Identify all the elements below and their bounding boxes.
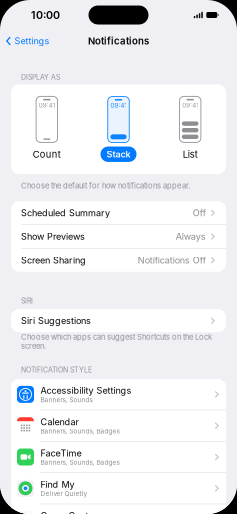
staticText: 09:41	[182, 102, 198, 109]
staticText: Accessibility Settings	[40, 385, 131, 396]
staticText: Show Previews	[21, 231, 85, 242]
staticText: Game Center	[40, 510, 96, 514]
staticText: Notifications Off	[138, 255, 206, 266]
staticText: 10:00	[31, 8, 60, 21]
staticText: 09:41	[39, 102, 55, 109]
staticText: Choose which apps can suggest Shortcuts …	[21, 332, 212, 351]
staticText: Calendar	[40, 416, 78, 427]
staticText: Choose the default for how notifications…	[21, 181, 190, 190]
staticText: FaceTime	[40, 448, 81, 459]
button[interactable]: 09:41	[27, 96, 67, 162]
staticText: Scheduled Summary	[21, 207, 110, 218]
button[interactable]: Settings	[0, 31, 49, 50]
staticText: Settings	[14, 35, 49, 46]
staticText: Banners, Sounds, Badges	[40, 459, 119, 466]
button[interactable]: FaceTime	[11, 442, 226, 472]
button[interactable]: 09:41	[177, 96, 204, 162]
staticText: Always	[176, 231, 206, 242]
staticText: Notifications	[88, 35, 149, 47]
staticText: Find My	[40, 479, 74, 490]
button[interactable]: Find My	[11, 473, 226, 504]
staticText: 09:41	[110, 102, 126, 109]
staticText: Off	[193, 207, 206, 218]
staticText: SIRI	[21, 297, 33, 305]
staticText: Banners, Sounds	[40, 396, 92, 404]
staticText: Screen Sharing	[21, 255, 86, 266]
staticText: Stack	[106, 149, 130, 160]
button[interactable]: Screen Sharing	[11, 249, 226, 272]
staticText: Deliver Quietly	[40, 490, 87, 498]
staticText: Count	[33, 149, 61, 160]
staticText: Siri Suggestions	[21, 315, 91, 326]
button[interactable]: Accessibility Settings	[11, 379, 226, 410]
button[interactable]: Show Previews	[11, 225, 226, 248]
button[interactable]: Calendar	[11, 410, 226, 441]
staticText: List	[183, 149, 198, 160]
staticText: Banners, Sounds, Badges	[40, 427, 119, 435]
staticText: NOTIFICATION STYLE	[21, 366, 92, 374]
button[interactable]: Game Center	[11, 504, 226, 514]
button[interactable]: Scheduled Summary	[11, 201, 226, 224]
button[interactable]: 09:41	[100, 97, 136, 162]
button[interactable]: Siri Suggestions	[11, 309, 226, 332]
staticText: DISPLAY AS	[21, 73, 60, 81]
